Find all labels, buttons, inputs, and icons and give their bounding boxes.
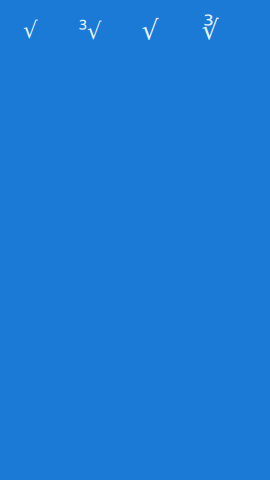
staticText: √: [23, 17, 37, 43]
staticText: ∛: [201, 15, 218, 45]
staticText: √: [141, 15, 158, 45]
staticText: ³√: [79, 15, 101, 45]
